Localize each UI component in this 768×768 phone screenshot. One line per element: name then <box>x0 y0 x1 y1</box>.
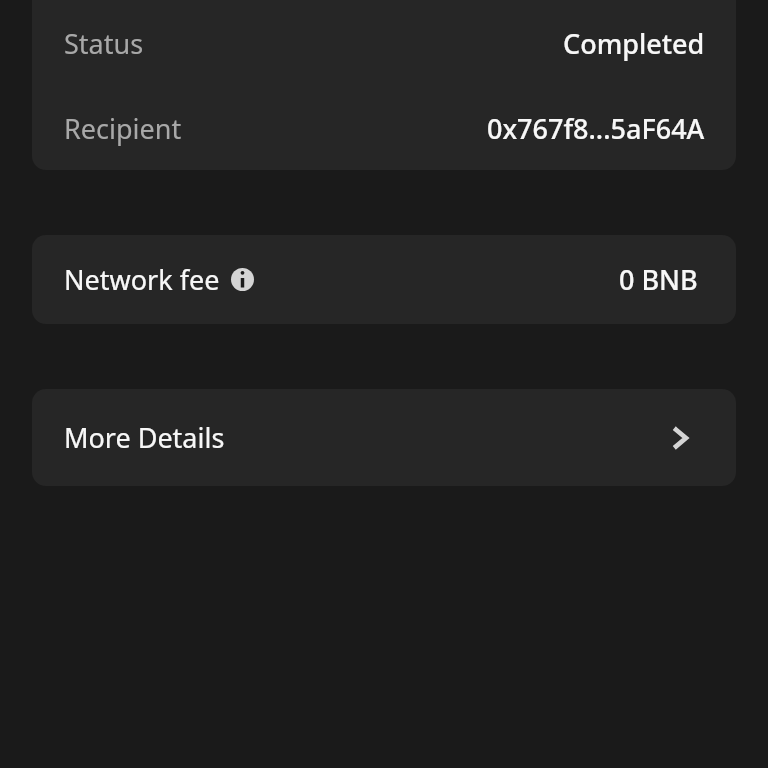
button[interactable]: About the network fee <box>231 268 254 291</box>
staticText: Network fee <box>64 261 220 298</box>
staticText: More Details <box>64 419 225 456</box>
button[interactable]: Status <box>32 0 736 86</box>
button[interactable]: Recipient <box>32 86 736 170</box>
button[interactable]: More Details <box>32 389 736 486</box>
button[interactable]: Network fee <box>32 235 736 324</box>
staticText: Completed <box>563 25 705 62</box>
staticText: Status <box>64 25 144 62</box>
staticText: 0 BNB <box>619 261 698 298</box>
staticText: Recipient <box>64 110 182 147</box>
staticText: 0x767f8...5aF64A <box>487 110 705 147</box>
